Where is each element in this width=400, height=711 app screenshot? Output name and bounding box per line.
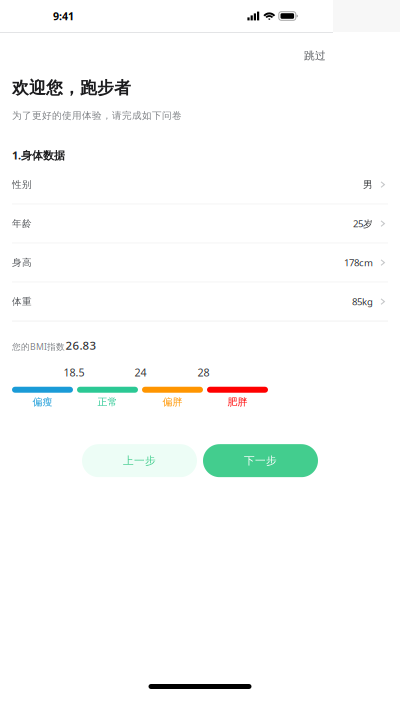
button[interactable]: 跳过 xyxy=(292,41,338,70)
staticText: 85kg xyxy=(352,295,373,308)
staticText: 性别 xyxy=(12,178,32,191)
staticText: 跳过 xyxy=(304,49,326,62)
button[interactable]: 体重 xyxy=(0,283,400,322)
staticText: 男 xyxy=(363,178,373,191)
staticText: 为了更好的使用体验，请完成如下问卷 xyxy=(12,110,182,122)
staticText: 178cm xyxy=(344,256,373,269)
staticText: 上一步 xyxy=(123,454,156,467)
staticText: 身高 xyxy=(12,256,32,269)
button[interactable]: 身高 xyxy=(0,244,400,283)
staticText: 18.5 xyxy=(63,365,84,380)
staticText: 1.身体数据 xyxy=(12,148,65,163)
button[interactable]: 性别 xyxy=(0,166,400,205)
staticText: 24 xyxy=(134,365,146,380)
staticText: 偏胖 xyxy=(162,396,182,408)
staticText: 下一步 xyxy=(244,454,277,467)
staticText: 28 xyxy=(197,365,209,380)
staticText: 正常 xyxy=(97,396,117,408)
button[interactable]: 上一步 xyxy=(82,444,197,477)
staticText: 体重 xyxy=(12,295,32,308)
staticText: 25岁 xyxy=(353,217,373,230)
staticText: 偏瘦 xyxy=(32,396,52,408)
staticText: 肥胖 xyxy=(227,396,247,408)
staticText: 您的BMI指数 xyxy=(12,341,65,352)
button[interactable]: 下一步 xyxy=(203,444,318,477)
button[interactable]: 年龄 xyxy=(0,205,400,244)
staticText: 欢迎您，跑步者 xyxy=(12,77,131,99)
staticText: 26.83 xyxy=(65,338,96,353)
staticText: 9:41 xyxy=(53,9,74,23)
staticText: 年龄 xyxy=(12,217,32,230)
